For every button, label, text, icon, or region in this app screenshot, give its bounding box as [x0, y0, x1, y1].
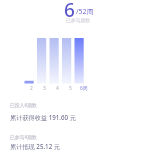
staticText: 累计抵现 25.12 元: [10, 142, 60, 150]
staticText: 2: [30, 85, 33, 92]
staticText: 5: [69, 85, 72, 92]
staticText: /52周: [76, 7, 94, 17]
button[interactable]: 6: [60, 0, 96, 24]
staticText: 6周: [80, 85, 88, 92]
staticText: 3: [43, 85, 46, 92]
button[interactable]: 已投入6期数: [0, 98, 160, 124]
staticText: 已参与4期数: [10, 134, 37, 141]
other: Weekly savings chart: [0, 0, 160, 160]
staticText: 累计获得收益 191.60 元: [10, 113, 76, 121]
button[interactable]: 已参与4期数: [0, 130, 160, 156]
staticText: 4: [56, 85, 59, 92]
staticText: 已投入6期数: [10, 102, 37, 109]
staticText: 已参与期数: [66, 17, 90, 23]
staticText: 6: [64, 0, 75, 21]
